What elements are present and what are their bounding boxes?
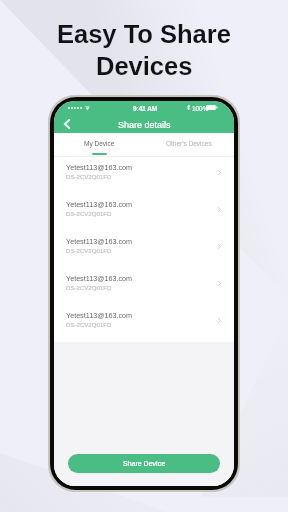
staticText: Share details [118, 120, 171, 130]
button[interactable]: Share Device [68, 454, 220, 473]
staticText: My Device [84, 140, 115, 147]
staticText: Yetest113@163.com [66, 274, 133, 282]
button[interactable]: Yetest113@163.com [54, 305, 234, 342]
staticText: Yetest113@163.com [66, 163, 133, 171]
staticText: Yetest113@163.com [66, 200, 133, 208]
staticText: Devices [96, 52, 193, 80]
staticText: DS-2CV2Q01FD [66, 210, 112, 217]
staticText: 100% [192, 105, 209, 112]
staticText: Share Device [123, 460, 166, 468]
button[interactable]: Yetest113@163.com [54, 268, 234, 305]
button[interactable]: Back [60, 116, 74, 132]
staticText: DS-2CV2Q01FD [66, 321, 112, 328]
button[interactable]: Yetest113@163.com [54, 231, 234, 268]
staticText: DS-2CV2Q01FD [66, 247, 112, 254]
button[interactable]: Yetest113@163.com [54, 194, 234, 231]
button[interactable]: Other's Devices [144, 133, 234, 156]
button[interactable]: Yetest113@163.com [54, 157, 234, 194]
staticText: Yetest113@163.com [66, 237, 133, 245]
staticText: Other's Devices [166, 140, 212, 147]
staticText: 9:41 AM [133, 105, 158, 112]
staticText: DS-2CV2Q01FD [66, 284, 112, 291]
staticText: DS-2CV2Q01FD [66, 173, 112, 180]
staticText: Easy To Share [57, 20, 231, 48]
button[interactable]: My Device [54, 133, 144, 156]
staticText: Yetest113@163.com [66, 311, 133, 319]
